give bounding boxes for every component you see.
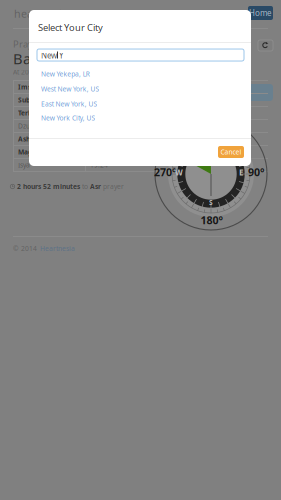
staticText: At 2014-06-21 on GMT+7: [13, 68, 92, 76]
button[interactable]: New York City, US: [41, 112, 221, 124]
staticText: Home: [249, 8, 272, 18]
staticText: West New York, US: [41, 85, 99, 93]
staticText: 05.52: [90, 109, 108, 117]
staticText: Imsak: [18, 83, 39, 91]
staticText: Cancel: [220, 148, 241, 156]
staticText: New York City, US: [41, 114, 95, 122]
staticText: W: [175, 167, 183, 178]
staticText: East New York, US: [41, 100, 97, 108]
button[interactable]: Home: [248, 6, 273, 20]
staticText: 270°: [154, 165, 177, 179]
staticText: Prayer Times in: [13, 38, 79, 50]
staticText: 90°: [248, 165, 265, 179]
staticText: Isya: [18, 161, 30, 169]
staticText: Maghrib: [18, 148, 45, 156]
staticText: prayer: [103, 182, 124, 191]
staticText: 04.33: [90, 96, 108, 104]
staticText: 15.12: [90, 135, 108, 143]
staticText: 180°: [200, 213, 223, 227]
staticText: Heartnesia: [40, 244, 75, 253]
staticText: Dzuhur: [18, 122, 41, 130]
staticText: Subuh: [18, 96, 38, 104]
staticText: © 2014: [13, 244, 37, 253]
staticText: to: [82, 182, 88, 191]
button[interactable]: Refresh: [258, 40, 273, 51]
staticText: New Y: [41, 50, 64, 61]
staticText: Asr: [90, 182, 101, 191]
button[interactable]: East New York, US: [41, 98, 221, 110]
staticText: S: [209, 198, 213, 207]
staticText: Ashar: [18, 135, 37, 143]
button[interactable]: Heartnesia: [40, 244, 75, 253]
staticText: Terbit: [18, 109, 37, 117]
staticText: 2 hours 52 minutes: [17, 182, 80, 191]
staticText: Select Your City: [38, 21, 103, 34]
button[interactable]: West New York, US: [41, 83, 221, 95]
staticText: E: [239, 167, 243, 178]
staticText: heartnesia: [14, 6, 68, 21]
button[interactable]: Cancel: [218, 146, 244, 158]
button[interactable]: New Yekepa, LR: [41, 68, 221, 80]
staticText: Bandung: [13, 49, 76, 68]
staticText: New Yekepa, LR: [41, 70, 90, 78]
staticText: 04.23: [90, 83, 108, 91]
staticText: 19.24: [90, 161, 108, 169]
button[interactable]: Change city: [240, 84, 273, 101]
